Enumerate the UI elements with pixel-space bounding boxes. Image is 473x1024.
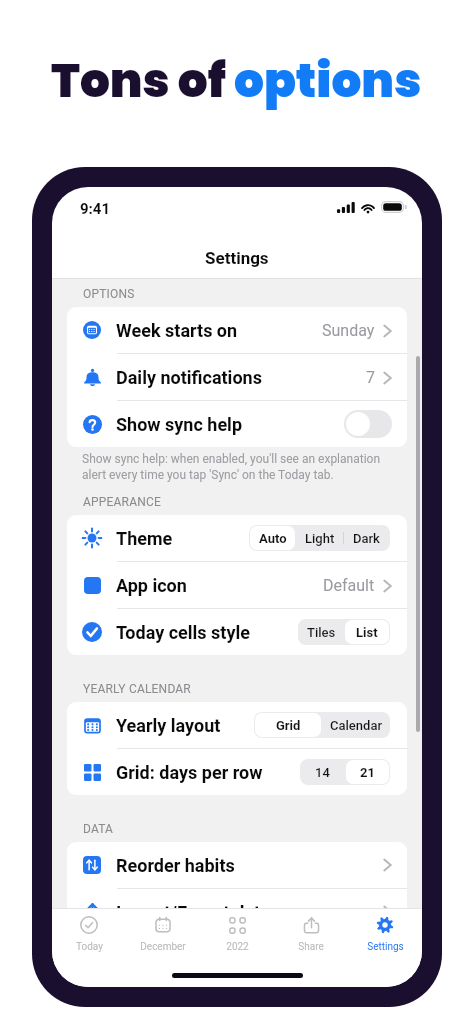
staticText: Show sync help (116, 414, 243, 435)
staticText: APPEARANCE (83, 495, 162, 509)
button[interactable]: Dark (344, 526, 389, 550)
staticText: 21 (360, 765, 375, 780)
staticText: 2022 (226, 941, 249, 953)
staticText: Grid (276, 718, 301, 733)
button[interactable]: App icon (67, 562, 407, 608)
button[interactable]: Grid: days per row (67, 749, 407, 795)
staticText: options (234, 48, 422, 114)
staticText: Theme (116, 528, 173, 549)
staticText: YEARLY CALENDAR (83, 682, 191, 696)
staticText: Show sync help: when enabled, you'll see… (82, 452, 402, 482)
staticText: List (356, 625, 378, 640)
staticText: Today cells style (116, 622, 250, 643)
button[interactable]: Today cells style (67, 609, 407, 655)
staticText: Import/Export data (116, 902, 270, 923)
button[interactable]: December (126, 909, 200, 956)
staticText: Sunday (322, 321, 375, 340)
staticText: App icon (116, 575, 187, 596)
button[interactable]: Share (274, 909, 348, 956)
staticText: Share (298, 941, 324, 953)
button[interactable]: Settings (348, 909, 422, 956)
staticText: Reorder habits (116, 855, 235, 876)
button[interactable]: Week starts on (67, 307, 407, 353)
staticText: Settings (205, 248, 269, 268)
button[interactable]: Show sync help toggle (344, 410, 392, 438)
staticText: Settings (367, 941, 404, 953)
staticText: 7 (366, 368, 375, 387)
button[interactable]: List (345, 620, 389, 644)
staticText: 9:41 (80, 200, 111, 218)
staticText: Dark (353, 531, 380, 546)
staticText: Tiles (307, 625, 336, 640)
button[interactable]: Import/Export data (67, 889, 407, 935)
staticText: OPTIONS (83, 287, 135, 301)
staticText: Daily notifications (116, 367, 262, 388)
staticText: DATA (83, 822, 114, 836)
staticText: Week starts on (116, 320, 238, 341)
button[interactable]: Calendar (323, 713, 389, 737)
button[interactable]: Auto (250, 526, 295, 550)
staticText: Light (305, 531, 335, 546)
button[interactable]: Today (52, 909, 126, 956)
button[interactable]: Reorder habits (67, 842, 407, 888)
button[interactable]: 14 (301, 760, 344, 784)
button[interactable]: Grid (255, 713, 321, 737)
staticText: Default (323, 576, 375, 595)
button[interactable]: Tiles (299, 620, 343, 644)
button[interactable]: Show sync help (67, 401, 407, 447)
staticText: Calendar (330, 718, 383, 733)
button[interactable]: 2022 (200, 909, 274, 956)
button[interactable]: Yearly layout (67, 702, 407, 748)
staticText: December (140, 941, 186, 953)
button[interactable]: Daily notifications (67, 354, 407, 400)
staticText: Today (76, 941, 103, 953)
staticText: Auto (259, 531, 287, 546)
button[interactable]: 21 (346, 760, 389, 784)
staticText: Tons of (51, 48, 234, 114)
staticText: 14 (315, 765, 330, 780)
staticText: Yearly layout (116, 715, 221, 736)
button[interactable]: Theme (67, 515, 407, 561)
staticText: Grid: days per row (116, 762, 263, 783)
button[interactable]: Light (297, 526, 342, 550)
